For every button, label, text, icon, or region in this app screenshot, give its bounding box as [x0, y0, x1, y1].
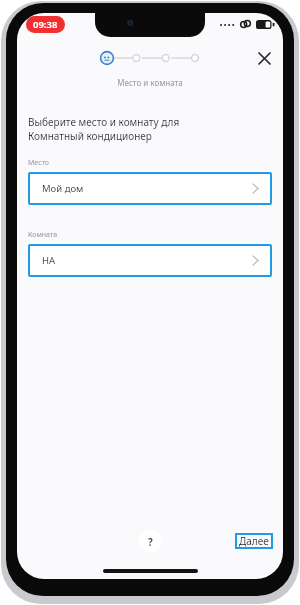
- staticText: Далее: [239, 534, 269, 548]
- staticText: Мой дом: [42, 182, 84, 195]
- staticText: Место: [28, 158, 49, 168]
- button[interactable]: Мой дом: [30, 174, 270, 203]
- button[interactable]: Закрыть: [251, 45, 277, 71]
- staticText: Комната: [28, 230, 58, 240]
- staticText: ?: [148, 535, 153, 549]
- staticText: НА: [42, 254, 56, 267]
- button[interactable]: НА: [30, 246, 270, 275]
- staticText: Место и комната: [17, 77, 283, 88]
- button[interactable]: Справка: [139, 530, 162, 553]
- staticText: 09:38: [33, 18, 58, 31]
- staticText: Выберите место и комнату для Комнатный к…: [28, 115, 180, 143]
- button[interactable]: Далее: [239, 534, 269, 548]
